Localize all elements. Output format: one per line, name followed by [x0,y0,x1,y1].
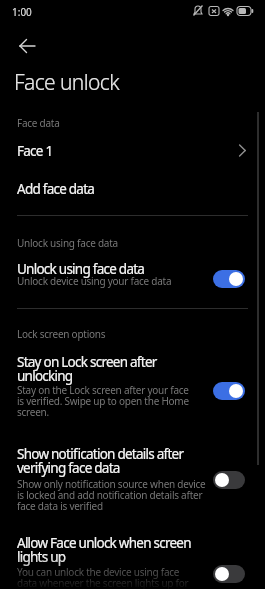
button[interactable]: Show notification details after [0,437,265,515]
staticText: face data is verified [17,499,103,513]
staticText: is verified. Swipe up to open the Home [17,394,189,408]
staticText: is locked and add notification details a… [17,488,203,502]
button[interactable] [12,30,44,62]
staticText: Stay on the Lock screen after your face [17,383,189,397]
staticText: Unlock using face data [17,260,145,278]
staticText: Add face data [17,180,95,198]
staticText: Face unlock [14,68,119,97]
staticText: Unlock using face data [17,236,118,250]
button[interactable]: Allow Face unlock when screen [0,528,265,589]
button[interactable] [213,565,245,583]
staticText: data whenever the screen lights up for [17,576,189,589]
button[interactable]: Stay on Lock screen after [0,345,265,425]
staticText: lights up [17,548,66,566]
staticText: Allow Face unlock when screen [17,534,191,552]
staticText: 1:00 [12,5,32,19]
staticText: Lock screen options [17,327,106,341]
staticText: You can unlock the device using face [17,565,180,579]
button[interactable] [213,270,245,288]
staticText: unlocking [17,367,73,385]
staticText: Face 1 [17,142,53,160]
staticText: screen. [17,405,49,419]
staticText: Stay on Lock screen after [17,353,157,371]
button[interactable] [213,471,245,489]
staticText: Face data [17,116,60,130]
button[interactable]: Add face data [0,168,265,208]
button[interactable]: Face 1 [0,132,265,168]
staticText: verifying face data [17,459,120,477]
button[interactable]: Unlock using face data [0,250,265,300]
button[interactable] [213,382,245,400]
staticText: Show only notification source when devic… [17,477,206,491]
staticText: Unlock device using your face data [17,274,172,288]
staticText: Show notification details after [17,445,184,463]
